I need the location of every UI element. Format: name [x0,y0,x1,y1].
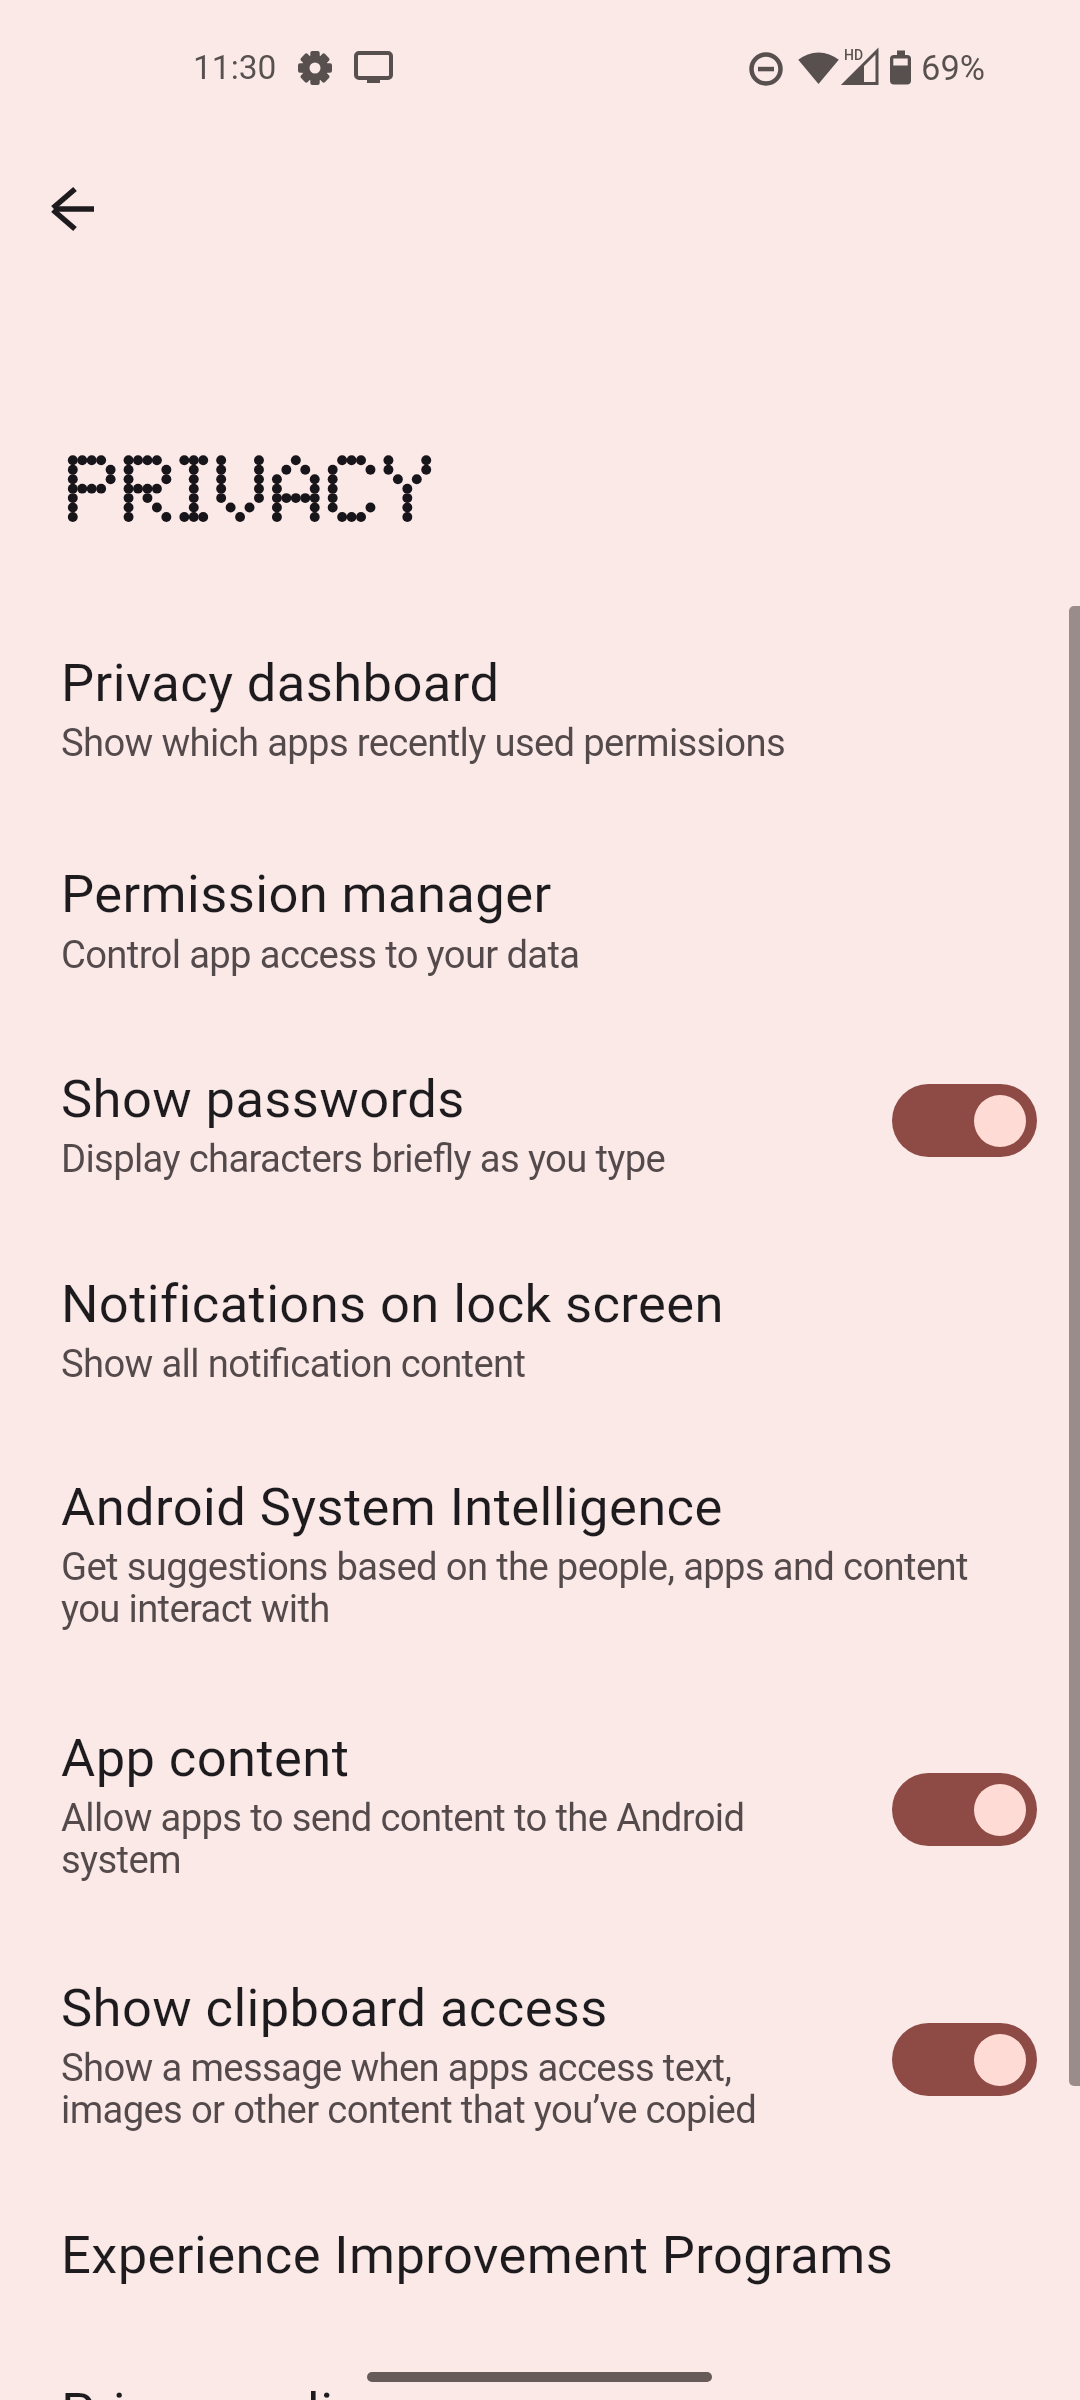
staticText: Show clipboard access [61,1977,608,2039]
button[interactable] [0,616,1080,821]
button[interactable] [0,1440,1080,1690]
button[interactable] [0,2345,1080,2400]
staticText: Experience Improvement Programs [61,2224,894,2286]
staticText: Notifications on lock screen [61,1273,724,1335]
staticText: Show passwords [61,1068,465,1130]
staticText: Show a message when apps access text, [61,2046,732,2091]
staticText: Android System Intelligence [61,1476,723,1538]
staticText: images or other content that you’ve copi… [61,2088,757,2133]
staticText: 11:30 [193,48,277,87]
button[interactable] [0,1032,1080,1237]
staticText: Show all notification content [61,1342,526,1387]
button[interactable] [0,1691,1080,1941]
button[interactable] [0,1941,1080,2191]
button[interactable] [892,1084,1037,1157]
button[interactable] [892,1773,1037,1846]
button[interactable] [892,2023,1037,2096]
staticText: App content [61,1727,350,1789]
button[interactable] [0,1237,1080,1442]
button[interactable] [26,161,122,257]
button[interactable] [0,827,1080,1032]
staticText: Get suggestions based on the people, app… [61,1545,968,1590]
staticText: system [61,1838,181,1883]
staticText: HD [844,47,864,63]
staticText: Allow apps to send content to the Androi… [61,1796,745,1841]
staticText: Display characters briefly as you type [61,1137,666,1182]
staticText: 69% [921,48,986,88]
staticText: Privacy policy [61,2381,387,2400]
staticText: Show which apps recently used permission… [61,721,785,766]
staticText: Control app access to your data [61,933,580,978]
button[interactable] [0,2188,1080,2338]
staticText: Privacy dashboard [61,652,500,714]
staticText: you interact with [61,1587,330,1632]
staticText: Permission manager [61,863,552,925]
